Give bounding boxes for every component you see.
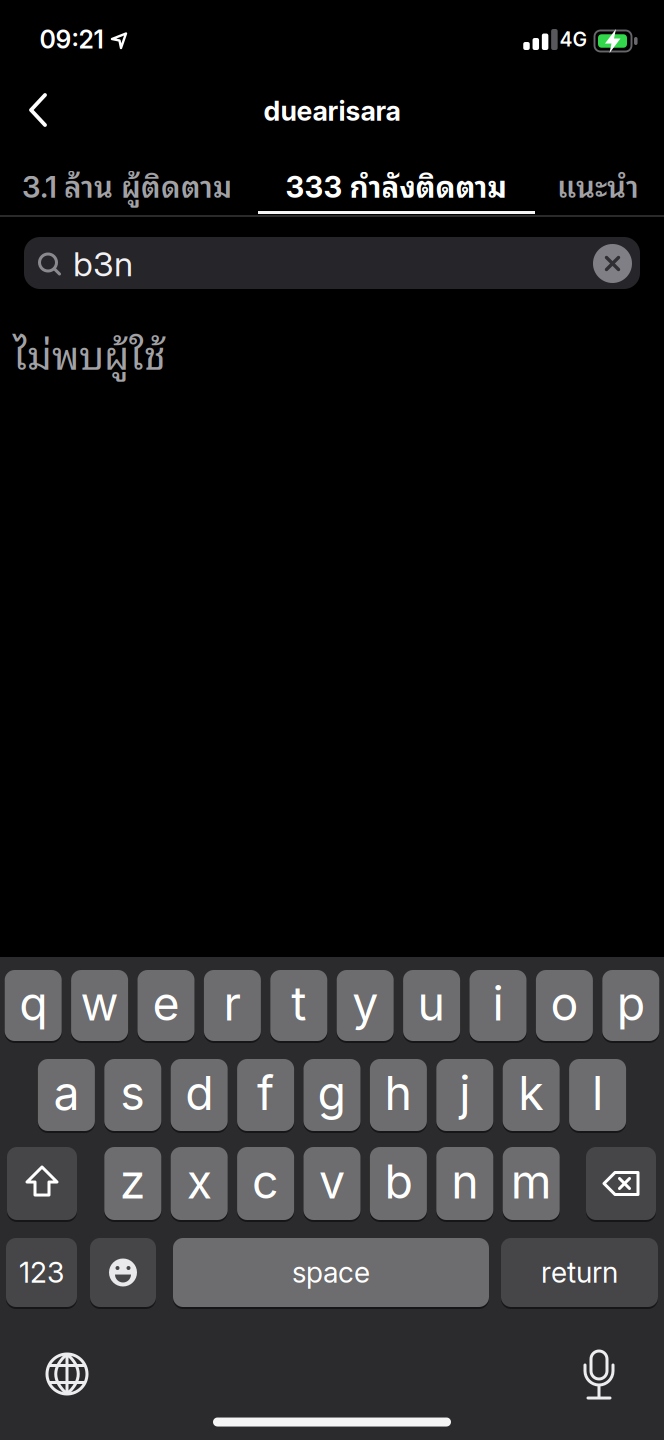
staticText: u bbox=[418, 975, 446, 1032]
button[interactable]: 333 กำลังติดตาม bbox=[285, 161, 506, 208]
staticText: n bbox=[451, 1153, 478, 1210]
staticText: 3.1 ล้าน ผู้ติดตาม bbox=[22, 161, 232, 208]
button[interactable]: e bbox=[137, 970, 194, 1041]
button[interactable]: g bbox=[303, 1059, 360, 1131]
button[interactable]: f bbox=[237, 1059, 294, 1131]
staticText: ไม่พบผู้ใช้ bbox=[13, 321, 166, 383]
button[interactable]: 3.1 ล้าน ผู้ติดตาม bbox=[22, 161, 232, 208]
button[interactable]: a bbox=[38, 1059, 95, 1131]
staticText: m bbox=[511, 1153, 552, 1210]
button[interactable]: x bbox=[171, 1147, 228, 1220]
button[interactable]: m bbox=[503, 1147, 560, 1220]
staticText: d bbox=[185, 1065, 213, 1121]
button[interactable]: n bbox=[436, 1147, 493, 1220]
staticText: g bbox=[317, 1065, 346, 1121]
button[interactable]: Shift bbox=[7, 1147, 77, 1220]
button[interactable]: q bbox=[5, 970, 62, 1041]
staticText: o bbox=[550, 975, 578, 1032]
staticText: s bbox=[120, 1065, 145, 1121]
button[interactable]: v bbox=[303, 1147, 360, 1220]
staticText: แนะนำ bbox=[557, 161, 639, 208]
staticText: 333 กำลังติดตาม bbox=[285, 161, 506, 208]
staticText: y bbox=[352, 975, 378, 1032]
staticText: j bbox=[459, 1065, 470, 1121]
button[interactable]: j bbox=[436, 1059, 493, 1131]
button[interactable]: b bbox=[370, 1147, 427, 1220]
staticText: i bbox=[492, 975, 503, 1032]
button[interactable]: Back bbox=[8, 82, 68, 138]
staticText: x bbox=[187, 1153, 212, 1210]
staticText: w bbox=[81, 975, 119, 1032]
staticText: b bbox=[384, 1153, 412, 1210]
staticText: duearisara bbox=[263, 95, 400, 127]
button[interactable]: Search bbox=[24, 237, 640, 289]
staticText: space bbox=[292, 1255, 370, 1290]
staticText: e bbox=[152, 975, 179, 1032]
button[interactable]: Clear search bbox=[593, 244, 632, 283]
staticText: f bbox=[257, 1065, 274, 1121]
button[interactable]: t bbox=[270, 970, 327, 1041]
button[interactable]: แนะนำ bbox=[557, 161, 639, 208]
staticText: b3n bbox=[73, 243, 133, 284]
staticText: v bbox=[319, 1153, 345, 1210]
staticText: c bbox=[252, 1153, 279, 1210]
staticText: k bbox=[518, 1065, 544, 1121]
button[interactable]: p bbox=[602, 970, 659, 1041]
button[interactable]: d bbox=[171, 1059, 228, 1131]
button[interactable]: w bbox=[71, 970, 128, 1041]
button[interactable]: Dictate bbox=[571, 1343, 627, 1407]
staticText: 123 bbox=[19, 1255, 64, 1290]
button[interactable]: z bbox=[104, 1147, 161, 1220]
staticText: 4G bbox=[559, 28, 587, 51]
button[interactable]: Next keyboard bbox=[39, 1346, 95, 1402]
staticText: l bbox=[592, 1065, 603, 1121]
button[interactable]: c bbox=[237, 1147, 294, 1220]
button[interactable]: o bbox=[536, 970, 593, 1041]
button[interactable]: return bbox=[501, 1238, 658, 1307]
button[interactable]: s bbox=[104, 1059, 161, 1131]
staticText: q bbox=[19, 975, 47, 1032]
button[interactable]: k bbox=[503, 1059, 560, 1131]
staticText: z bbox=[120, 1153, 146, 1210]
staticText: return bbox=[541, 1255, 618, 1290]
button[interactable]: 123 bbox=[6, 1238, 77, 1307]
staticText: h bbox=[384, 1065, 412, 1121]
button[interactable]: r bbox=[204, 970, 261, 1041]
button[interactable]: u bbox=[403, 970, 460, 1041]
button[interactable]: Emoji bbox=[90, 1238, 156, 1307]
button[interactable]: space bbox=[173, 1238, 489, 1307]
button[interactable]: Delete bbox=[586, 1147, 656, 1220]
staticText: 09:21 bbox=[39, 24, 103, 55]
button[interactable]: l bbox=[569, 1059, 626, 1131]
staticText: t bbox=[291, 975, 306, 1032]
staticText: a bbox=[53, 1065, 79, 1121]
staticText: p bbox=[617, 975, 645, 1032]
button[interactable]: y bbox=[337, 970, 394, 1041]
button[interactable]: h bbox=[370, 1059, 427, 1131]
button[interactable]: i bbox=[469, 970, 526, 1041]
staticText: r bbox=[223, 975, 241, 1032]
